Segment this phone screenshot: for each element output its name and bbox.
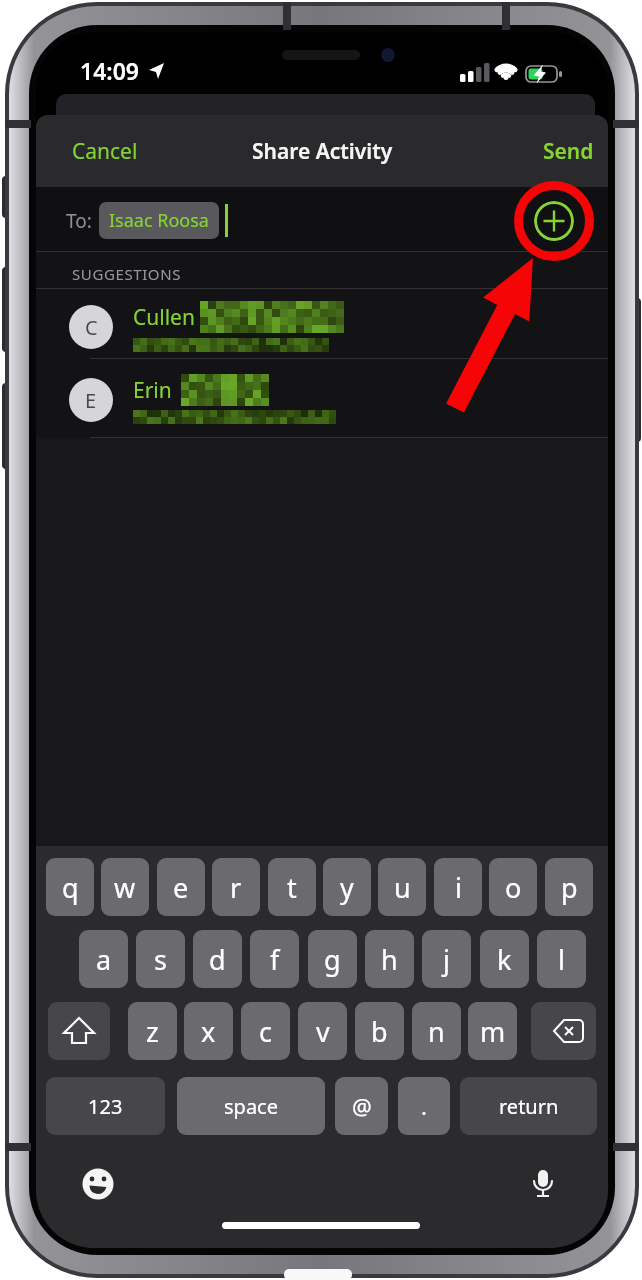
- button[interactable]: [36, 359, 608, 437]
- button[interactable]: v: [298, 1002, 347, 1060]
- button[interactable]: h: [365, 930, 414, 988]
- button[interactable]: o: [489, 858, 537, 916]
- button[interactable]: 123: [46, 1077, 165, 1135]
- button[interactable]: c: [241, 1002, 290, 1060]
- button[interactable]: t: [268, 858, 316, 916]
- staticText: h: [381, 941, 398, 978]
- staticText: y: [340, 869, 354, 906]
- button[interactable]: @: [335, 1077, 388, 1135]
- staticText: e: [173, 869, 189, 906]
- button[interactable]: n: [412, 1002, 461, 1060]
- staticText: @: [352, 1091, 372, 1121]
- button[interactable]: l: [537, 930, 586, 988]
- button[interactable]: return: [460, 1077, 597, 1135]
- staticText: n: [428, 1013, 445, 1050]
- button[interactable]: k: [480, 930, 529, 988]
- button[interactable]: i: [434, 858, 482, 916]
- button[interactable]: x: [184, 1002, 233, 1060]
- staticText: Isaac Roosa: [109, 208, 209, 233]
- button[interactable]: Isaac Roosa: [99, 202, 219, 239]
- button[interactable]: u: [378, 858, 426, 916]
- staticText: space: [224, 1093, 278, 1120]
- staticText: Cullen: [133, 303, 195, 332]
- button[interactable]: p: [545, 858, 593, 916]
- button[interactable]: g: [308, 930, 357, 988]
- staticText: v: [316, 1013, 330, 1050]
- button[interactable]: [36, 289, 608, 358]
- button[interactable]: Cancel: [66, 115, 156, 187]
- staticText: Cancel: [72, 137, 138, 166]
- button[interactable]: Send: [506, 115, 596, 187]
- staticText: SUGGESTIONS: [72, 264, 181, 284]
- staticText: o: [505, 869, 522, 906]
- staticText: To:: [66, 208, 92, 234]
- staticText: p: [561, 869, 578, 906]
- staticText: .: [421, 1091, 427, 1121]
- staticText: l: [558, 941, 565, 978]
- staticText: return: [499, 1093, 559, 1120]
- button[interactable]: j: [422, 930, 471, 988]
- button[interactable]: [534, 201, 574, 241]
- staticText: z: [146, 1013, 159, 1050]
- button[interactable]: b: [355, 1002, 404, 1060]
- staticText: 123: [88, 1093, 123, 1120]
- staticText: d: [209, 941, 226, 978]
- button[interactable]: m: [468, 1002, 517, 1060]
- staticText: Send: [543, 137, 594, 166]
- staticText: Share Activity: [252, 137, 393, 166]
- staticText: C: [85, 314, 98, 341]
- staticText: c: [259, 1013, 272, 1050]
- staticText: i: [455, 869, 462, 906]
- staticText: t: [287, 869, 297, 906]
- button[interactable]: q: [46, 858, 94, 916]
- staticText: w: [114, 869, 136, 906]
- staticText: q: [62, 869, 79, 906]
- button[interactable]: w: [101, 858, 149, 916]
- staticText: j: [443, 941, 450, 978]
- staticText: x: [201, 1013, 216, 1050]
- staticText: r: [230, 869, 242, 906]
- staticText: Erin: [133, 376, 172, 405]
- staticText: u: [394, 869, 411, 906]
- button[interactable]: e: [157, 858, 205, 916]
- staticText: k: [497, 941, 512, 978]
- staticText: s: [154, 941, 167, 978]
- button[interactable]: r: [212, 858, 260, 916]
- button[interactable]: d: [193, 930, 242, 988]
- button[interactable]: s: [136, 930, 185, 988]
- button[interactable]: .: [398, 1077, 450, 1135]
- button[interactable]: z: [128, 1002, 177, 1060]
- staticText: f: [270, 941, 280, 978]
- button[interactable]: f: [250, 930, 299, 988]
- staticText: E: [85, 387, 97, 414]
- staticText: a: [96, 941, 112, 978]
- button[interactable]: [48, 1002, 110, 1060]
- button[interactable]: a: [79, 930, 128, 988]
- button[interactable]: space: [177, 1077, 325, 1135]
- button[interactable]: [531, 1002, 596, 1060]
- button[interactable]: y: [323, 858, 371, 916]
- staticText: m: [480, 1013, 506, 1050]
- staticText: b: [371, 1013, 388, 1050]
- staticText: 14:09: [80, 55, 139, 86]
- staticText: g: [324, 941, 341, 978]
